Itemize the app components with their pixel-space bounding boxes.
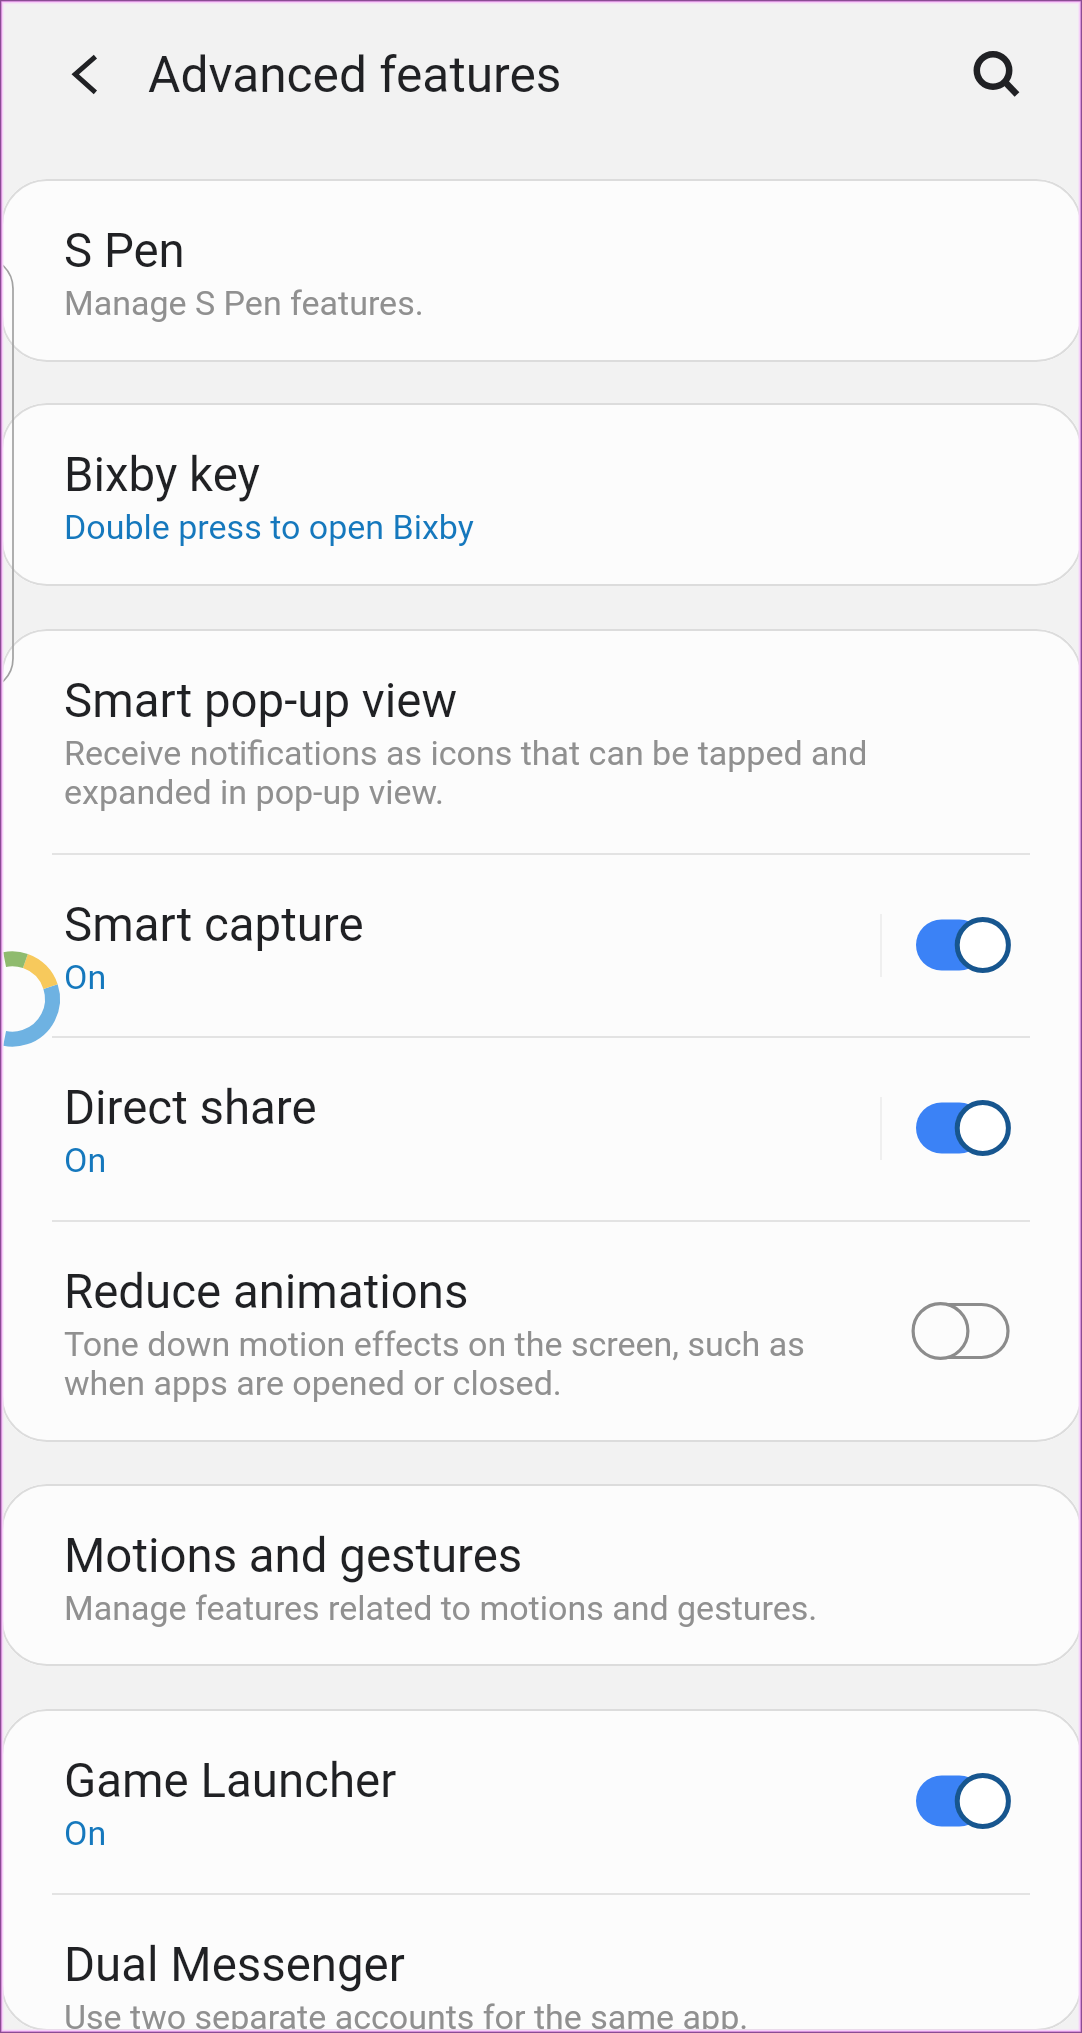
button[interactable]: Switch on [908,1763,1026,1839]
button[interactable]: Search [958,36,1030,108]
staticText: Advanced features [148,46,562,104]
button[interactable]: Dual Messenger [1,1893,1082,2031]
staticText: On [64,1141,107,1180]
staticText: Bixby key [64,447,260,503]
button[interactable]: Switch on [908,907,1026,983]
staticText: S Pen [64,223,185,279]
button[interactable]: Back [52,40,118,106]
button[interactable]: Switch off [908,1293,1026,1369]
button[interactable]: Switch on [908,1090,1026,1166]
staticText: Game Launcher [64,1753,397,1809]
staticText: Manage S Pen features. [64,284,424,323]
button[interactable]: Motions and gestures [1,1484,1082,1666]
button[interactable]: Game Launcher [1,1709,1082,1893]
staticText: Smart capture [64,897,364,953]
staticText: Dual Messenger [64,1937,405,1993]
staticText: On [64,1814,107,1853]
staticText: Smart pop-up view [64,673,458,729]
button[interactable]: S Pen [1,179,1082,362]
staticText: Motions and gestures [64,1528,523,1584]
staticText: Manage features related to motions and g… [64,1589,818,1628]
staticText: Use two separate accounts for the same a… [64,1998,749,2031]
staticText: On [64,958,107,997]
staticText: Receive notifications as icons that can … [64,734,868,812]
staticText: Reduce animations [64,1264,469,1320]
button[interactable]: Smart capture [1,853,1082,1036]
button[interactable]: Direct share [1,1036,1082,1220]
button[interactable]: Reduce animations [1,1220,1082,1442]
button[interactable]: Smart pop-up view [1,629,1082,853]
staticText: Direct share [64,1080,317,1136]
staticText: Tone down motion effects on the screen, … [64,1325,805,1403]
button[interactable]: Bixby key [1,403,1082,586]
staticText: Double press to open Bixby [64,508,474,547]
